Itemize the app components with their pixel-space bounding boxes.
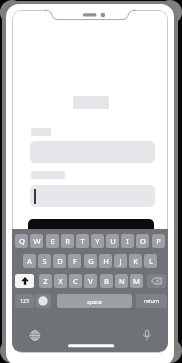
staticText: B (104, 276, 109, 286)
staticText: T (80, 236, 85, 246)
staticText: W (33, 236, 41, 246)
button[interactable] (147, 274, 166, 288)
staticText: S (42, 256, 47, 266)
button[interactable]: A (23, 254, 36, 268)
staticText: N (119, 276, 125, 286)
button[interactable]: T (76, 234, 89, 248)
staticText: space (87, 298, 102, 305)
button[interactable]: D (53, 254, 66, 268)
button[interactable]: S (38, 254, 51, 268)
button[interactable]: B (100, 274, 113, 288)
button[interactable]: return (136, 294, 167, 308)
staticText: H (103, 256, 109, 266)
staticText: K (133, 256, 138, 266)
button[interactable]: 123 (15, 294, 34, 308)
staticText: C (73, 276, 78, 286)
staticText: F (73, 256, 77, 266)
button[interactable]: J (114, 254, 127, 268)
button[interactable]: Q (15, 234, 28, 248)
button[interactable]: G (84, 254, 97, 268)
button[interactable]: F (68, 254, 81, 268)
button[interactable]: N (115, 274, 128, 288)
button[interactable]: R (61, 234, 74, 248)
button[interactable]: O (136, 234, 149, 248)
button[interactable]: Z (39, 274, 52, 288)
button[interactable]: H (99, 254, 112, 268)
button[interactable]: E (46, 234, 59, 248)
button[interactable]: C (69, 274, 82, 288)
button[interactable]: I (121, 234, 134, 248)
staticText: P (156, 236, 161, 246)
staticText: return (144, 298, 159, 305)
staticText: A (27, 256, 32, 266)
staticText: Q (19, 236, 25, 246)
staticText: V (88, 276, 93, 286)
button[interactable]: L (144, 254, 157, 268)
button[interactable]: V (84, 274, 97, 288)
staticText: O (140, 236, 146, 246)
button[interactable]: U (106, 234, 119, 248)
staticText: Y (95, 236, 100, 246)
staticText: 123 (20, 298, 29, 305)
staticText: U (110, 236, 116, 246)
staticText: D (57, 256, 63, 266)
button[interactable]: X (54, 274, 67, 288)
button[interactable] (35, 294, 51, 308)
button[interactable]: P (152, 234, 165, 248)
staticText: R (65, 236, 70, 246)
staticText: M (133, 276, 140, 286)
staticText: L (149, 256, 153, 266)
button[interactable]: Y (91, 234, 104, 248)
staticText: I (126, 236, 129, 246)
button[interactable]: W (30, 234, 43, 248)
button[interactable]: K (129, 254, 142, 268)
button[interactable]: space (57, 294, 132, 308)
staticText: X (58, 276, 63, 286)
staticText: Z (43, 276, 48, 286)
button[interactable] (30, 185, 155, 207)
staticText: J (119, 256, 122, 266)
staticText: G (88, 256, 94, 266)
staticText: E (50, 236, 55, 246)
button[interactable] (15, 274, 34, 288)
button[interactable] (28, 219, 154, 235)
button[interactable]: M (130, 274, 143, 288)
